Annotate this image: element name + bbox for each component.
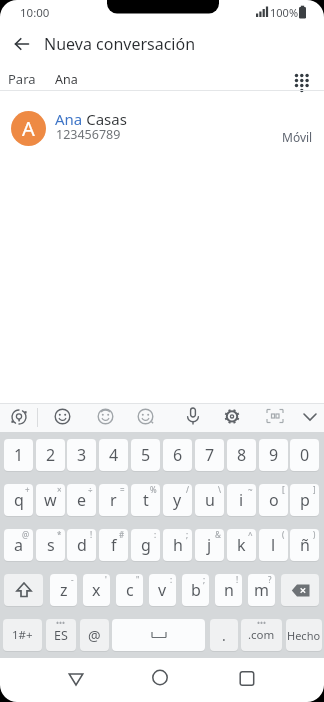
- staticText: ES: [54, 627, 68, 644]
- button[interactable]: [222, 406, 242, 426]
- button[interactable]: h: [163, 529, 192, 561]
- button[interactable]: 0: [290, 439, 319, 471]
- button[interactable]: [281, 574, 319, 606]
- staticText: /: [186, 484, 189, 495]
- button[interactable]: e: [67, 484, 96, 516]
- button[interactable]: g: [131, 529, 160, 561]
- button[interactable]: t: [131, 484, 160, 516]
- button[interactable]: .com: [241, 619, 282, 651]
- button[interactable]: 6: [163, 439, 192, 471]
- button[interactable]: [266, 408, 284, 425]
- button[interactable]: l: [259, 529, 288, 561]
- button[interactable]: [0, 100, 324, 156]
- staticText: !: [236, 574, 239, 585]
- staticText: Móvil: [282, 129, 313, 145]
- button[interactable]: a: [4, 529, 33, 561]
- staticText: j: [207, 534, 212, 556]
- staticText: i: [239, 489, 244, 511]
- button[interactable]: w: [36, 484, 65, 516]
- button[interactable]: Hecho: [286, 619, 322, 651]
- staticText: k: [237, 534, 246, 556]
- staticText: b: [191, 579, 201, 601]
- button[interactable]: p: [290, 484, 319, 516]
- staticText: 100%: [270, 5, 299, 20]
- button[interactable]: y: [163, 484, 192, 516]
- button[interactable]: [112, 619, 205, 651]
- button[interactable]: s: [36, 529, 65, 561]
- staticText: .com: [248, 627, 275, 643]
- button[interactable]: k: [227, 529, 256, 561]
- button[interactable]: f: [99, 529, 128, 561]
- button[interactable]: ñ: [290, 529, 319, 561]
- button[interactable]: z: [50, 574, 77, 606]
- button[interactable]: 3: [67, 439, 96, 471]
- staticText: !: [90, 529, 93, 540]
- staticText: ": [136, 574, 140, 585]
- button[interactable]: 8: [227, 439, 256, 471]
- button[interactable]: [184, 406, 202, 427]
- button[interactable]: v: [149, 574, 176, 606]
- button[interactable]: c: [116, 574, 143, 606]
- staticText: -: [71, 574, 74, 585]
- staticText: w: [44, 489, 57, 511]
- staticText: 1#+: [12, 627, 33, 643]
- button[interactable]: r: [99, 484, 128, 516]
- button[interactable]: o: [259, 484, 288, 516]
- staticText: c: [126, 579, 134, 601]
- staticText: 4: [109, 444, 119, 466]
- staticText: @: [22, 529, 30, 540]
- button[interactable]: b: [182, 574, 209, 606]
- staticText: *: [57, 529, 62, 540]
- button[interactable]: x: [83, 574, 110, 606]
- staticText: ^: [248, 529, 253, 540]
- button[interactable]: m: [248, 574, 275, 606]
- button[interactable]: 1#+: [3, 619, 42, 651]
- button[interactable]: [0, 62, 324, 90]
- staticText: :: [170, 574, 173, 585]
- button[interactable]: [290, 68, 314, 94]
- staticText: ]: [313, 484, 316, 495]
- staticText: ?: [268, 574, 272, 585]
- staticText: 8: [237, 444, 247, 466]
- button[interactable]: [136, 407, 155, 426]
- button[interactable]: [4, 574, 43, 606]
- button[interactable]: [53, 407, 72, 426]
- staticText: s: [47, 534, 55, 556]
- button[interactable]: [301, 410, 319, 424]
- staticText: +: [25, 484, 30, 495]
- staticText: 3: [77, 444, 87, 466]
- button[interactable]: 5: [131, 439, 160, 471]
- staticText: ÷: [88, 484, 93, 495]
- button[interactable]: [6, 32, 34, 56]
- button[interactable]: 4: [99, 439, 128, 471]
- button[interactable]: [9, 407, 29, 427]
- button[interactable]: q: [4, 484, 33, 516]
- staticText: Para: [8, 70, 36, 88]
- button[interactable]: [146, 664, 174, 690]
- button[interactable]: .: [210, 619, 238, 651]
- button[interactable]: j: [195, 529, 224, 561]
- button[interactable]: 1: [4, 439, 33, 471]
- staticText: %: [150, 484, 157, 495]
- staticText: e: [77, 489, 87, 511]
- button[interactable]: @: [80, 619, 109, 651]
- staticText: 10:00: [20, 5, 50, 21]
- button[interactable]: u: [195, 484, 224, 516]
- staticText: A: [22, 115, 35, 142]
- button[interactable]: d: [67, 529, 96, 561]
- staticText: 9: [269, 444, 279, 466]
- button[interactable]: 7: [195, 439, 224, 471]
- button[interactable]: [96, 407, 115, 426]
- button[interactable]: 9: [259, 439, 288, 471]
- button[interactable]: i: [227, 484, 256, 516]
- staticText: 7: [205, 444, 215, 466]
- button[interactable]: [62, 666, 90, 692]
- button[interactable]: 2: [36, 439, 65, 471]
- button[interactable]: n: [215, 574, 242, 606]
- staticText: o: [269, 489, 279, 511]
- staticText: m: [254, 579, 269, 601]
- staticText: d: [77, 534, 87, 556]
- button[interactable]: ES: [46, 619, 76, 651]
- staticText: t: [143, 489, 149, 511]
- button[interactable]: [233, 665, 261, 691]
